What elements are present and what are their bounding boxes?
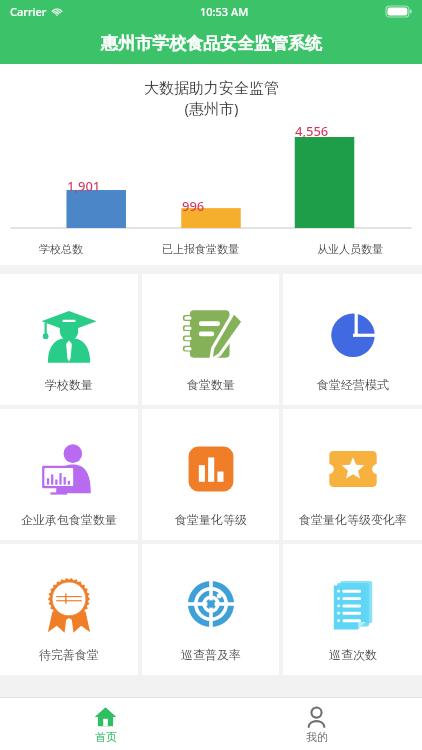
button[interactable]: 首页 (0, 698, 211, 750)
staticText: 996 (182, 197, 241, 215)
staticText: 食堂量化等级 (175, 512, 247, 527)
staticText: 待完善食堂 (39, 647, 99, 662)
button[interactable]: 食堂量化等级 (142, 409, 279, 540)
button[interactable]: 巡查次数 (283, 544, 422, 675)
staticText: 1,901 (67, 177, 126, 195)
button[interactable]: 食堂数量 (142, 274, 279, 405)
button[interactable]: 食堂经营模式 (283, 274, 422, 405)
button[interactable]: 企业承包食堂数量 (0, 409, 138, 540)
staticText: 我的 (306, 730, 328, 744)
button[interactable]: 我的 (211, 698, 422, 750)
staticText: 首页 (95, 730, 117, 744)
staticText: 学校总数 (39, 242, 83, 256)
button[interactable]: 学校数量 (0, 274, 138, 405)
button[interactable]: 待完善食堂 (0, 544, 138, 675)
staticText: 10:53 AM (200, 4, 249, 19)
staticText: 惠州市学校食品安全监管系统 (101, 33, 322, 54)
staticText: 食堂数量 (187, 377, 235, 392)
staticText: 食堂经营模式 (317, 377, 389, 392)
staticText: 学校数量 (45, 377, 93, 392)
staticText: 企业承包食堂数量 (21, 512, 117, 527)
staticText: 巡查普及率 (181, 647, 241, 662)
staticText: 已上报食堂数量 (162, 242, 239, 256)
button[interactable]: 巡查普及率 (142, 544, 279, 675)
staticText: 大数据助力安全监管 (144, 79, 279, 98)
button[interactable]: 食堂量化等级变化率 (283, 409, 422, 540)
staticText: 从业人员数量 (317, 242, 383, 256)
staticText: 巡查次数 (329, 647, 377, 662)
staticText: Carrier (10, 4, 47, 19)
staticText: (惠州市) (184, 98, 239, 118)
staticText: 4,556 (295, 122, 354, 140)
staticText: 食堂量化等级变化率 (299, 512, 407, 527)
